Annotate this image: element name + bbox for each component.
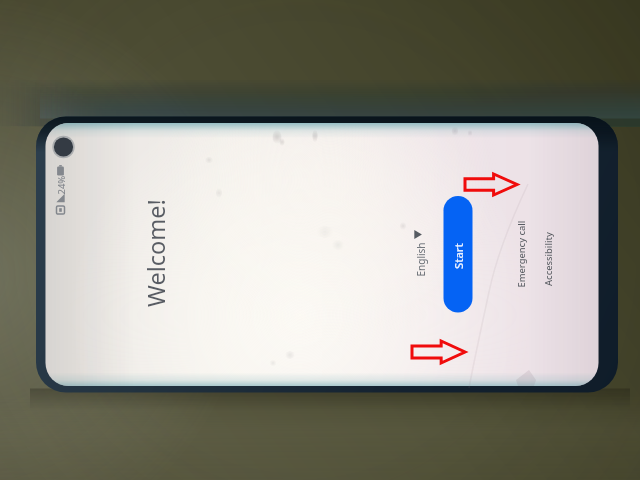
other: Photo of a phone showing the Welcome set… bbox=[0, 0, 640, 480]
